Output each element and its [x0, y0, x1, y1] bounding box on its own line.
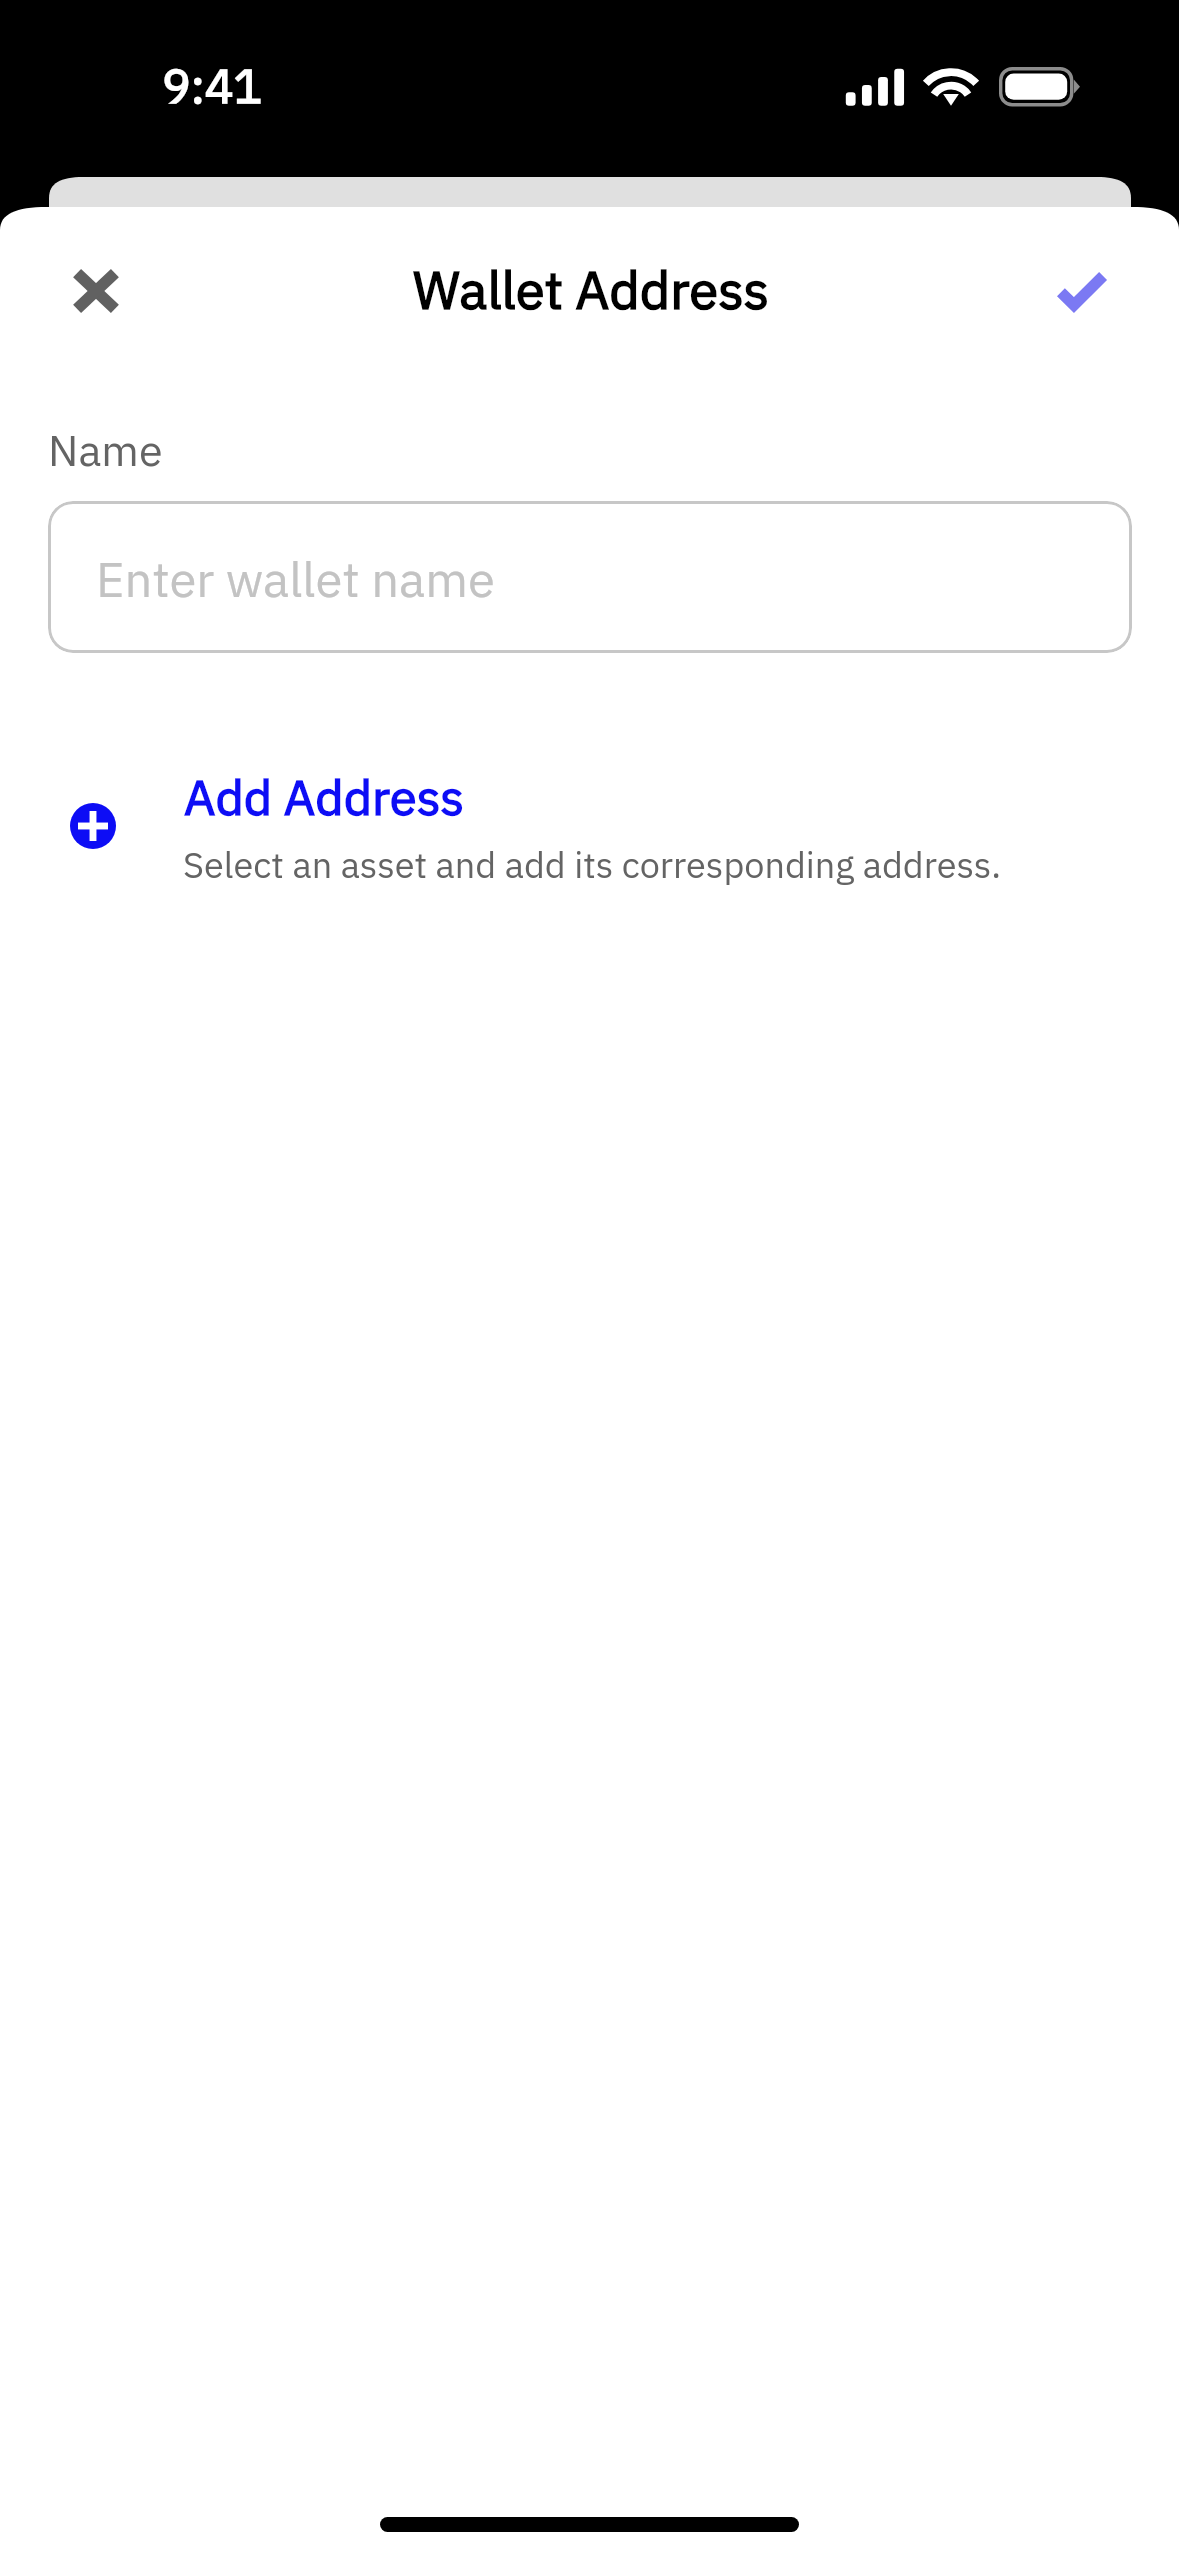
staticText: Add Address: [184, 765, 465, 829]
button[interactable]: Save: [1033, 244, 1131, 337]
staticText: Enter wallet name: [96, 547, 495, 611]
staticText: Select an asset and add its correspondin…: [183, 841, 1001, 888]
button[interactable]: Close: [47, 244, 144, 337]
staticText: 9:41: [162, 54, 263, 116]
staticText: Wallet Address: [413, 255, 770, 323]
staticText: Name: [48, 422, 163, 478]
button[interactable]: Enter wallet name: [48, 501, 1132, 653]
button[interactable]: Add Address: [0, 760, 1179, 905]
